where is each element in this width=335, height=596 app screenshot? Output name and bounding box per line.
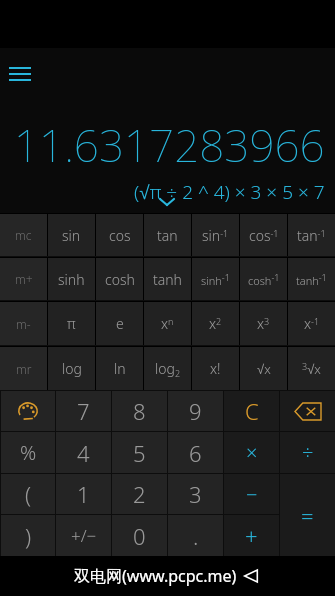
button[interactable]: x2: [192, 302, 239, 345]
button[interactable]: +: [224, 515, 279, 556]
staticText: x3: [257, 314, 270, 333]
staticText: mr: [16, 361, 32, 377]
staticText: log2: [155, 359, 181, 379]
staticText: ): [25, 521, 32, 551]
staticText: √x: [257, 360, 271, 378]
staticText: =: [301, 500, 314, 530]
staticText: x2: [209, 314, 222, 333]
staticText: tanh-1: [296, 271, 327, 288]
staticText: 双电网(www.pcpc.me): [74, 565, 237, 587]
staticText: 3: [189, 479, 202, 509]
button[interactable]: √x: [240, 347, 287, 390]
button[interactable]: tan-1: [288, 214, 335, 256]
staticText: m-: [16, 316, 31, 332]
button[interactable]: .: [168, 515, 223, 556]
button[interactable]: tanh: [144, 258, 191, 300]
staticText: tan: [157, 226, 178, 245]
staticText: .: [193, 521, 199, 551]
staticText: 1: [77, 479, 90, 509]
button[interactable]: Menu: [4, 58, 36, 90]
staticText: 4: [77, 438, 90, 468]
staticText: x!: [210, 359, 221, 378]
button[interactable]: cos: [96, 214, 143, 256]
button[interactable]: m-: [0, 302, 47, 345]
staticText: log: [62, 359, 82, 378]
button[interactable]: =: [280, 474, 335, 556]
button[interactable]: ×: [224, 432, 279, 473]
staticText: %: [20, 439, 37, 466]
button[interactable]: Backspace: [280, 391, 335, 431]
button[interactable]: 9: [168, 391, 223, 431]
button[interactable]: 4: [56, 432, 111, 473]
button[interactable]: ÷: [280, 432, 335, 473]
staticText: m+: [15, 271, 33, 287]
button[interactable]: Theme: [1, 391, 55, 431]
button[interactable]: 5: [112, 432, 167, 473]
button[interactable]: ): [1, 515, 55, 556]
staticText: cos: [109, 226, 131, 245]
button[interactable]: ln: [96, 347, 143, 390]
staticText: π: [67, 314, 76, 333]
staticText: sinh: [58, 270, 85, 289]
staticText: 6: [189, 438, 202, 468]
button[interactable]: %: [1, 432, 55, 473]
button[interactable]: 2: [112, 474, 167, 514]
button[interactable]: +/−: [56, 515, 111, 556]
staticText: +: [245, 521, 258, 551]
staticText: 7: [77, 396, 90, 426]
button[interactable]: sinh-1: [192, 258, 239, 300]
button[interactable]: e: [96, 302, 143, 345]
staticText: (: [25, 479, 32, 509]
button[interactable]: x-1: [288, 302, 335, 345]
staticText: cos-1: [249, 226, 279, 245]
staticText: tanh: [153, 270, 182, 289]
staticText: 3√x: [302, 360, 321, 378]
button[interactable]: 1: [56, 474, 111, 514]
staticText: xn: [161, 314, 174, 333]
staticText: mc: [15, 227, 32, 243]
staticText: 0: [133, 521, 146, 551]
staticText: 5: [133, 438, 146, 468]
staticText: (√π ÷ 2 ^ 4) × 3 × 5 × 7: [134, 179, 325, 205]
button[interactable]: π: [48, 302, 95, 345]
button[interactable]: 8: [112, 391, 167, 431]
button[interactable]: 3√x: [288, 347, 335, 390]
button[interactable]: (: [1, 474, 55, 514]
button[interactable]: cos-1: [240, 214, 287, 256]
button[interactable]: tan: [144, 214, 191, 256]
button[interactable]: xn: [144, 302, 191, 345]
staticText: cosh: [105, 270, 135, 289]
staticText: cosh-1: [248, 271, 280, 288]
staticText: +/−: [71, 524, 97, 547]
staticText: 8: [133, 396, 146, 426]
staticText: ×: [246, 439, 258, 466]
button[interactable]: C: [224, 391, 279, 431]
staticText: 11.6317283966: [14, 115, 325, 175]
button[interactable]: sinh: [48, 258, 95, 300]
staticText: sin: [62, 226, 81, 245]
button[interactable]: tanh-1: [288, 258, 335, 300]
button[interactable]: 0: [112, 515, 167, 556]
button[interactable]: 3: [168, 474, 223, 514]
button[interactable]: m+: [0, 258, 47, 300]
button[interactable]: 6: [168, 432, 223, 473]
button[interactable]: x3: [240, 302, 287, 345]
staticText: sin-1: [202, 226, 229, 245]
staticText: ÷: [302, 439, 314, 466]
button[interactable]: cosh: [96, 258, 143, 300]
button[interactable]: mr: [0, 347, 47, 390]
button[interactable]: sin: [48, 214, 95, 256]
staticText: 9: [189, 396, 202, 426]
button[interactable]: 7: [56, 391, 111, 431]
staticText: −: [246, 481, 258, 508]
button[interactable]: cosh-1: [240, 258, 287, 300]
button[interactable]: log2: [144, 347, 191, 390]
button[interactable]: mc: [0, 214, 47, 256]
button[interactable]: sin-1: [192, 214, 239, 256]
staticText: 2: [133, 479, 146, 509]
button[interactable]: Back: [241, 566, 261, 586]
button[interactable]: log: [48, 347, 95, 390]
button[interactable]: −: [224, 474, 279, 514]
staticText: e: [116, 314, 124, 333]
button[interactable]: x!: [192, 347, 239, 390]
